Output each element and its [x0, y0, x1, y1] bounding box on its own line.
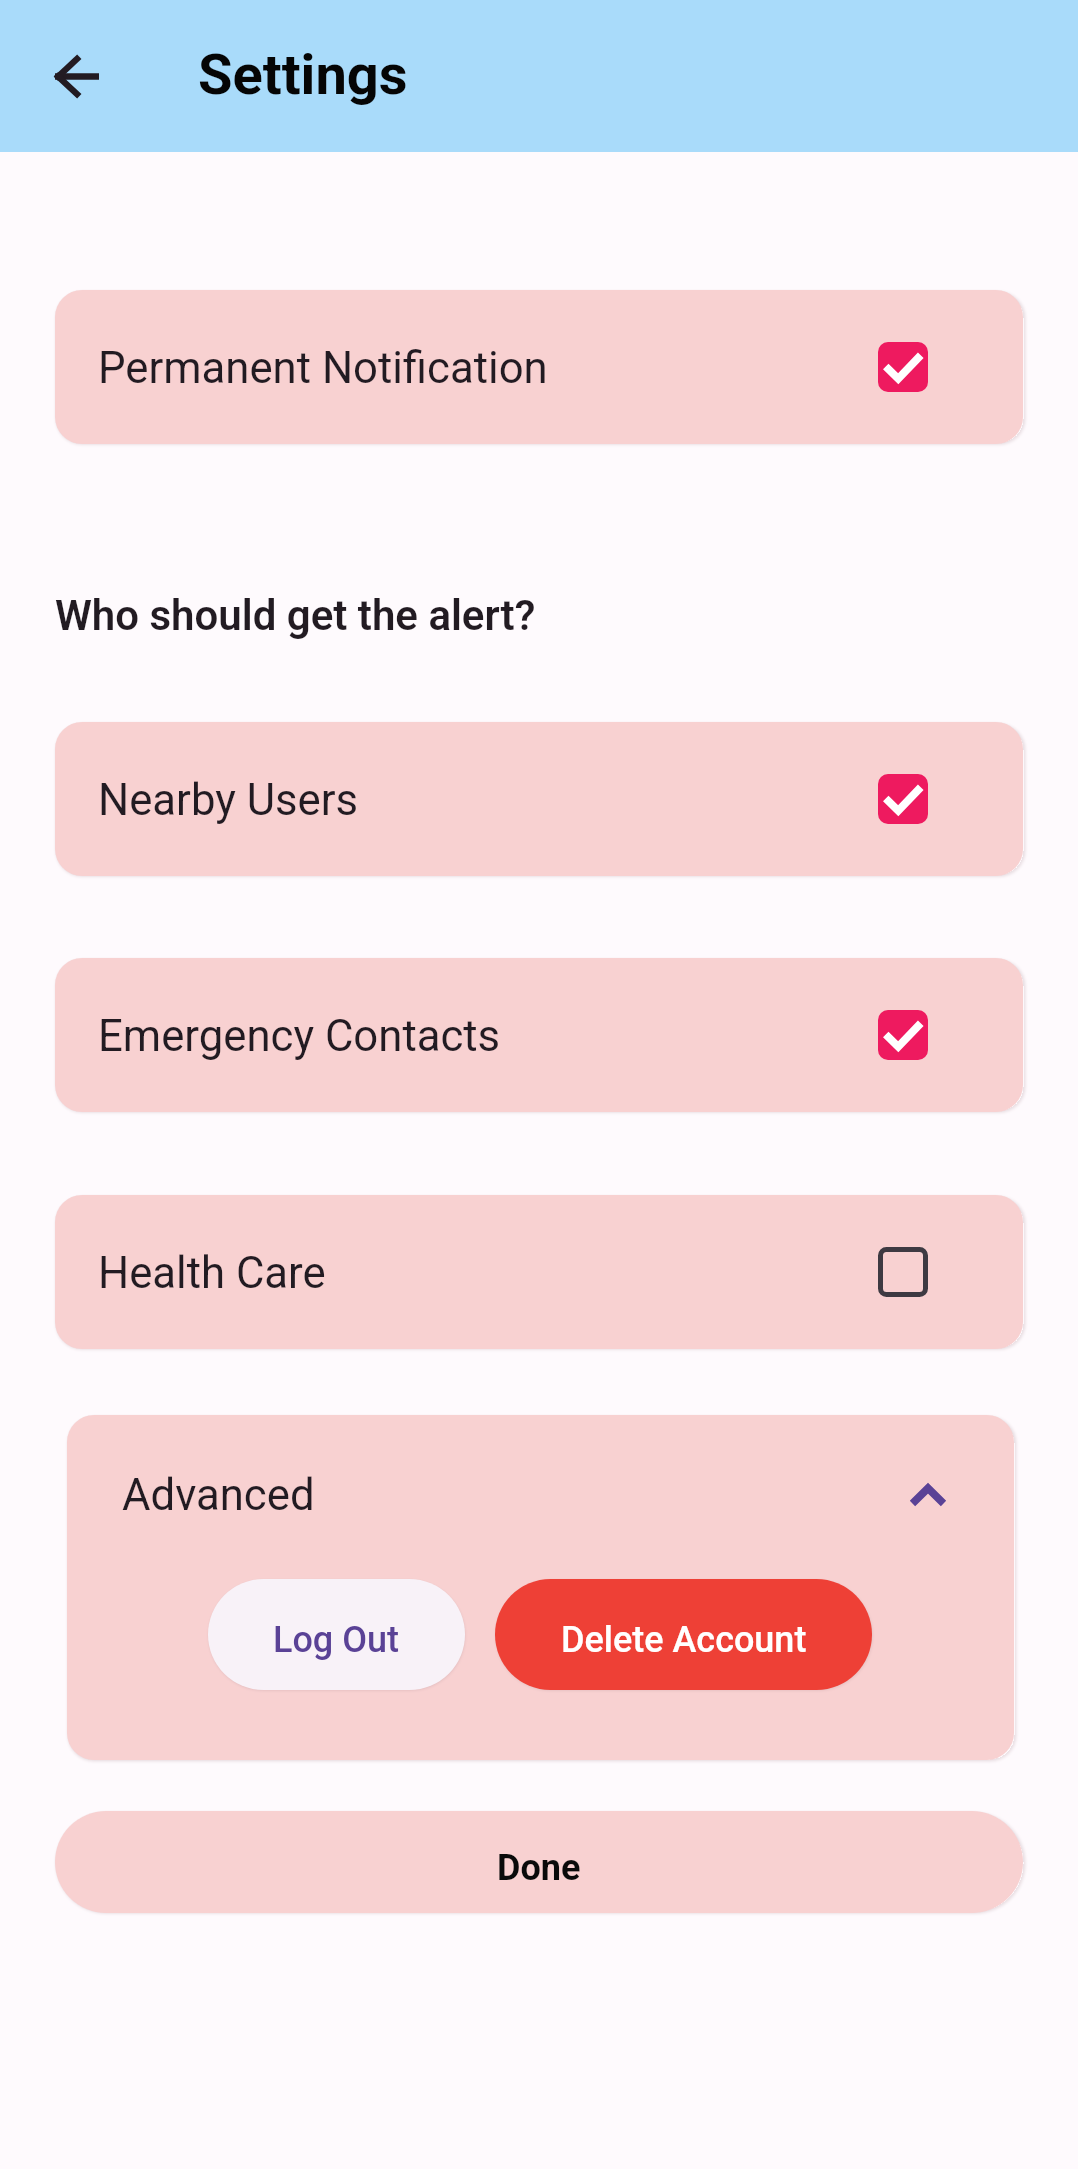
staticText: Nearby Users: [98, 774, 359, 825]
staticText: Delete Account: [561, 1619, 807, 1661]
button[interactable]: Nearby Users: [55, 722, 1023, 876]
staticText: Emergency Contacts: [98, 1010, 501, 1061]
staticText: Health Care: [98, 1247, 326, 1298]
staticText: Permanent Notification: [98, 342, 548, 393]
button[interactable]: Delete Account: [495, 1579, 872, 1690]
staticText: Advanced: [122, 1469, 315, 1520]
staticText: Done: [497, 1847, 581, 1889]
button[interactable]: Advanced: [67, 1415, 1014, 1573]
button[interactable]: Permanent Notification: [55, 290, 1023, 444]
button[interactable]: Back: [33, 32, 121, 120]
staticText: Log Out: [273, 1619, 400, 1661]
button[interactable]: Done: [55, 1811, 1023, 1913]
button[interactable]: Collapse Advanced: [900, 1466, 956, 1522]
staticText: Who should get the alert?: [55, 591, 536, 640]
button[interactable]: Log Out: [208, 1579, 465, 1690]
button[interactable]: Health Care: [55, 1195, 1023, 1349]
button[interactable]: Emergency Contacts: [55, 958, 1023, 1112]
staticText: Settings: [198, 42, 408, 108]
